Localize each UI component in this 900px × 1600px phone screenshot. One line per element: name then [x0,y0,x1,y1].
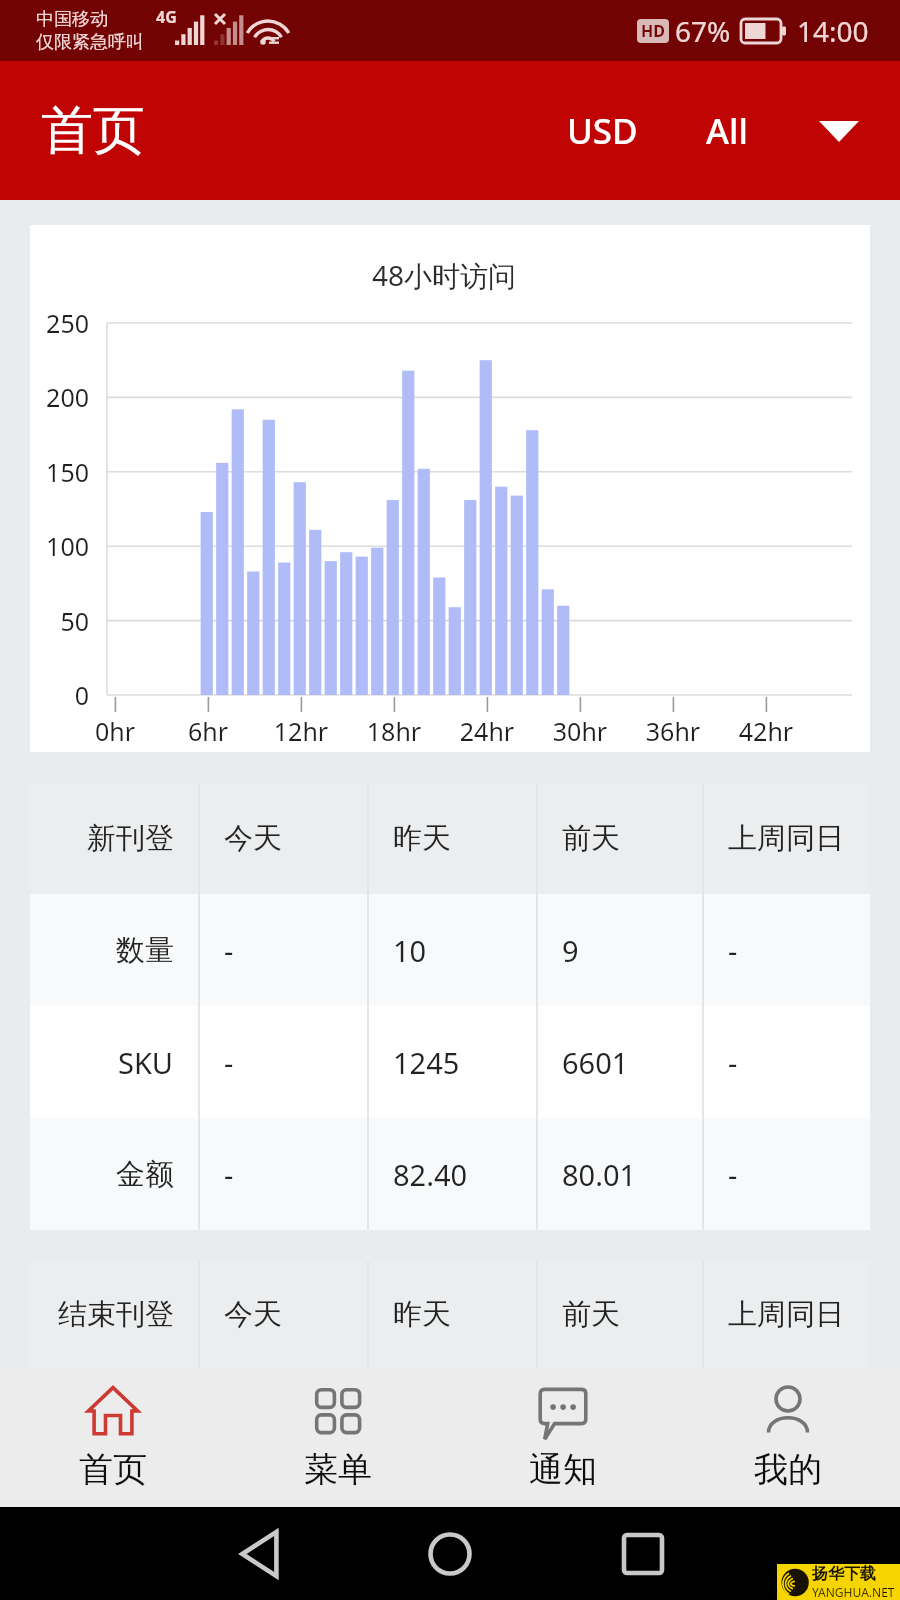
button[interactable]: 首页 [0,1367,225,1507]
staticText: 30hr [530,714,630,748]
staticText: USD [567,107,638,155]
staticText: - [224,931,234,970]
staticText: 250 [27,306,89,340]
staticText: 150 [27,455,89,489]
staticText: HD [641,20,665,42]
staticText: 昨天 [393,820,451,857]
staticText: 36hr [623,714,723,748]
staticText: 首页 [41,98,145,164]
staticText: 上周同日 [728,1296,844,1333]
staticText: 24hr [437,714,537,748]
staticText: 新刊登 [87,820,174,857]
staticText: 6601 [562,1043,629,1082]
staticText: - [224,1155,234,1194]
button[interactable]: Home [412,1516,488,1592]
staticText: 80.01 [562,1155,637,1194]
staticText: 50 [27,604,89,638]
staticText: 通知 [529,1448,597,1491]
staticText: 今天 [224,820,282,857]
staticText: 扬华下载 [812,1564,876,1584]
button[interactable]: USD [553,89,652,173]
staticText: 82.40 [393,1155,468,1194]
staticText: 18hr [344,714,444,748]
staticText: YANGHUA.NET [812,1584,895,1600]
staticText: 9 [562,931,579,970]
staticText: 仅限紧急呼叫 [36,31,144,54]
staticText: - [728,931,738,970]
staticText: 6hr [158,714,258,748]
staticText: 中国移动 [36,8,108,31]
staticText: 上周同日 [728,820,844,857]
staticText: 前天 [562,1296,620,1333]
button[interactable]: Back [224,1516,300,1592]
staticText: SKU [118,1043,174,1082]
button[interactable]: Filter dropdown [804,96,874,166]
staticText: 200 [27,380,89,414]
staticText: - [224,1043,234,1082]
staticText: 1245 [393,1043,460,1082]
staticText: 67% [675,12,731,50]
staticText: 48小时访问 [30,256,858,294]
staticText: 我的 [754,1448,822,1491]
staticText: 结束刊登 [58,1296,174,1333]
staticText: 42hr [716,714,816,748]
staticText: 数量 [116,932,174,969]
staticText: - [728,1043,738,1082]
staticText: 10 [393,931,427,970]
button[interactable]: 菜单 [225,1367,450,1507]
button[interactable]: 通知 [450,1367,675,1507]
staticText: 100 [27,529,89,563]
staticText: 菜单 [304,1448,372,1491]
button[interactable]: 我的 [675,1367,900,1507]
staticText: All [706,107,748,155]
button[interactable]: Recents [605,1516,681,1592]
staticText: - [728,1155,738,1194]
staticText: 前天 [562,820,620,857]
staticText: 金额 [116,1156,174,1193]
staticText: 4G [156,6,177,28]
staticText: 首页 [79,1448,147,1491]
staticText: 0 [27,678,89,712]
staticText: 14:00 [797,12,869,50]
staticText: 今天 [224,1296,282,1333]
button[interactable]: All [692,89,762,173]
staticText: 12hr [251,714,351,748]
staticText: 昨天 [393,1296,451,1333]
staticText: 0hr [65,714,165,748]
